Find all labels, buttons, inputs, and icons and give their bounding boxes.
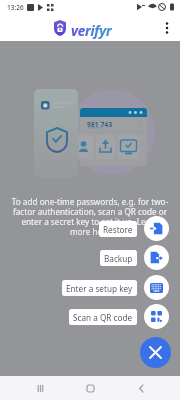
staticText: 981 743 <box>87 120 113 129</box>
button[interactable]: More options <box>156 17 178 39</box>
button[interactable]: Restore <box>99 221 137 237</box>
button[interactable]: Enter a setup key <box>144 275 169 300</box>
button[interactable]: Close menu <box>140 337 171 368</box>
staticText: Scan a QR code <box>73 312 133 323</box>
button[interactable]: Backup <box>144 245 169 270</box>
staticText: verifyr <box>71 22 112 40</box>
button[interactable]: Recents <box>29 377 51 399</box>
staticText: 13:26 <box>7 3 24 12</box>
button[interactable]: Scan a QR code <box>144 304 169 329</box>
staticText: Restore <box>103 224 133 235</box>
button[interactable]: Back <box>130 377 152 399</box>
staticText: Enter a setup key <box>66 283 133 294</box>
button[interactable]: Enter a setup key <box>62 280 137 296</box>
staticText: To add one-time passwords, e.g. for two-… <box>11 196 169 237</box>
staticText: Backup <box>104 253 133 264</box>
button[interactable]: Backup <box>100 250 137 266</box>
button[interactable]: Home <box>79 377 101 399</box>
button[interactable]: Restore <box>144 216 169 241</box>
button[interactable]: Scan a QR code <box>69 309 137 325</box>
